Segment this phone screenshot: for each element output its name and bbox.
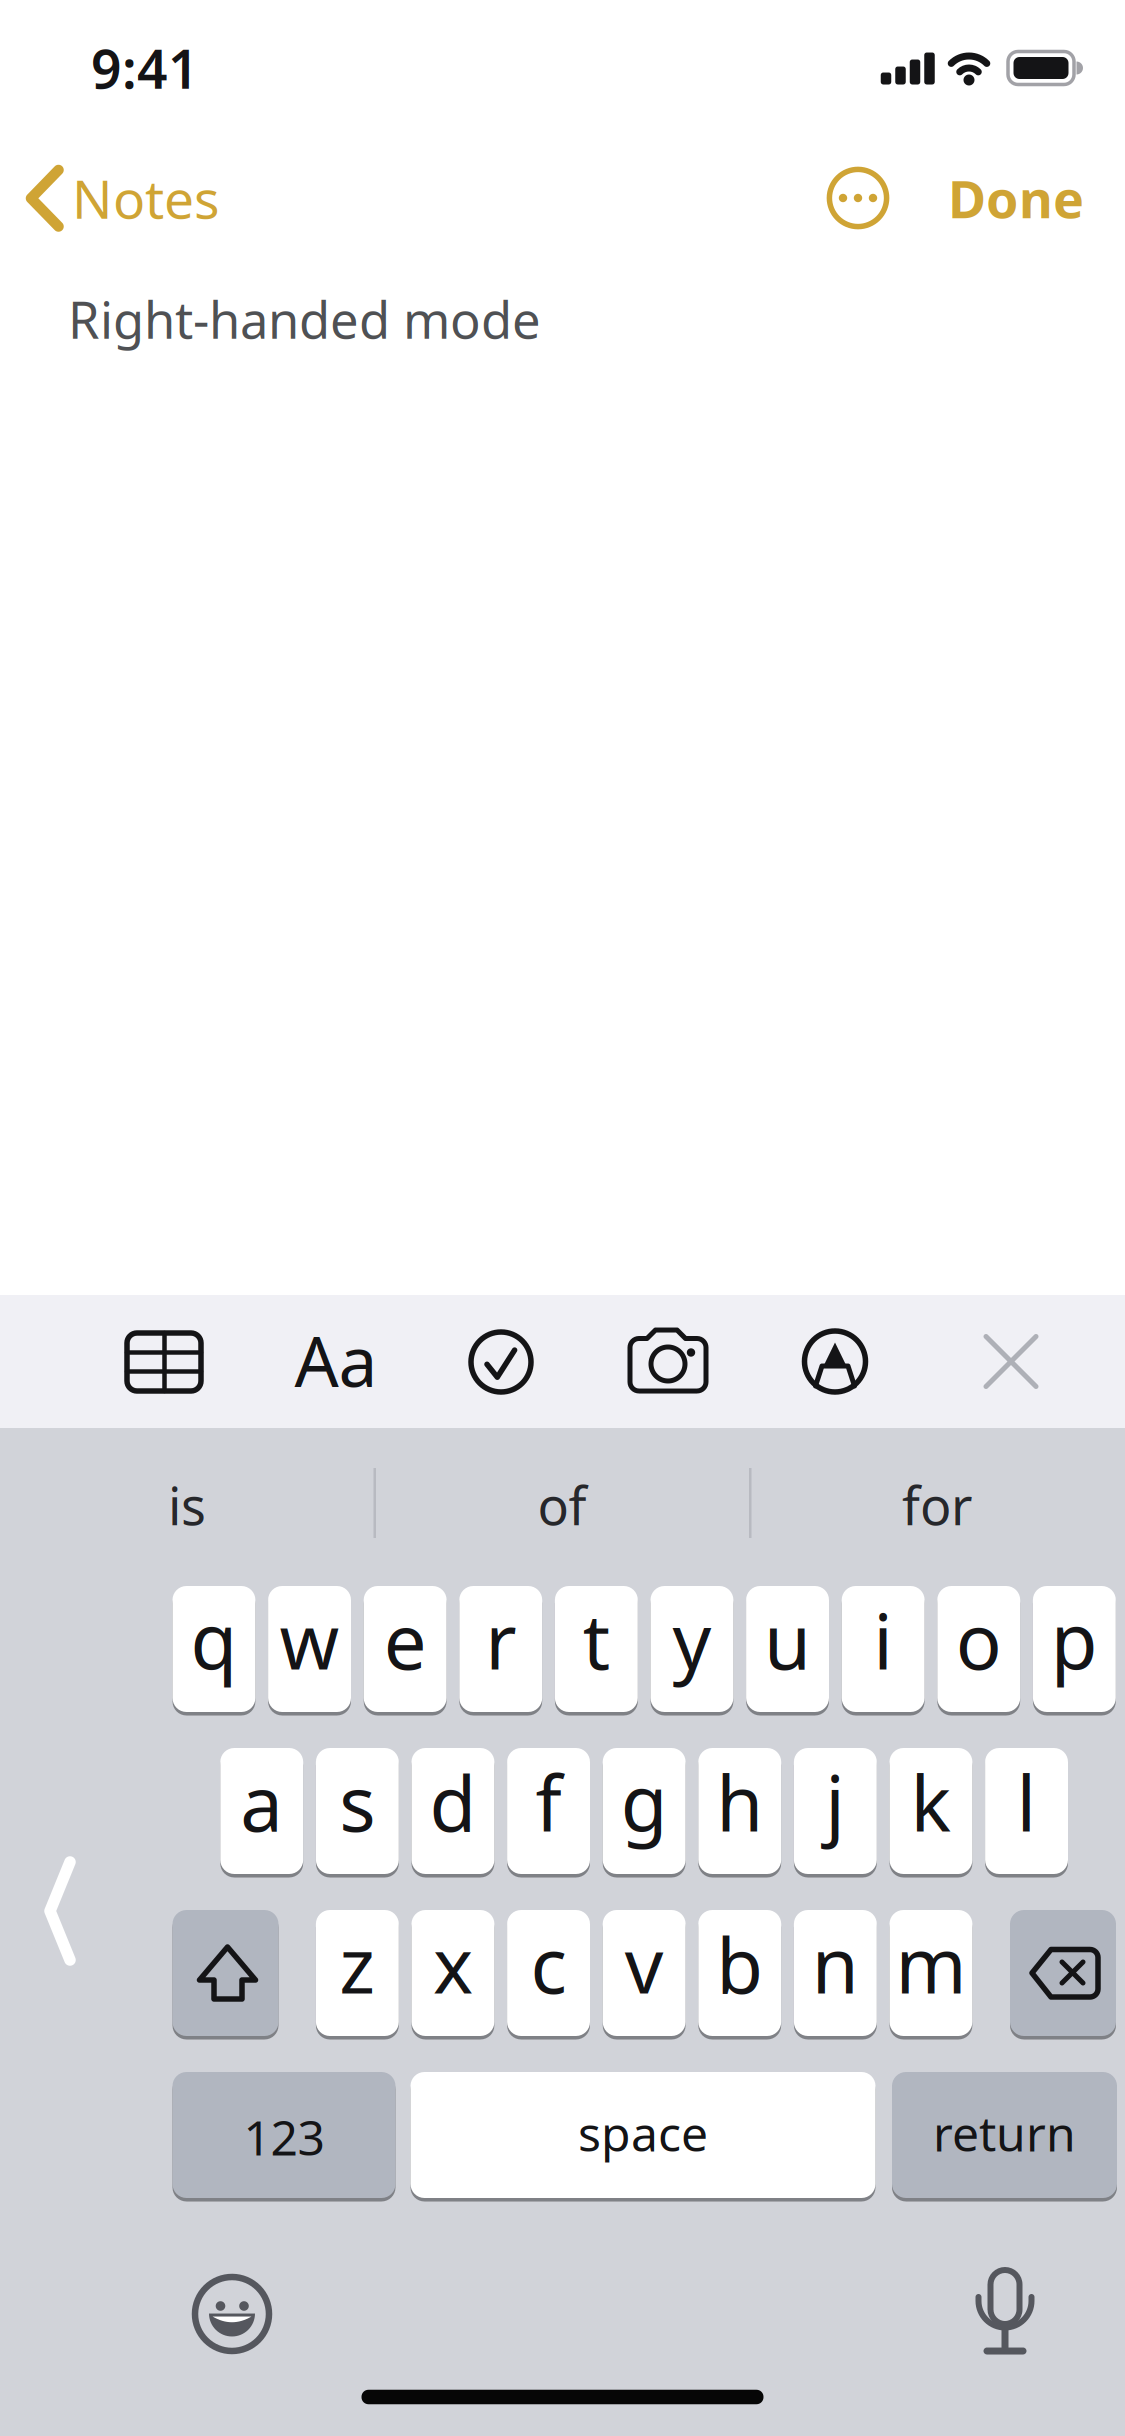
- button[interactable]: y: [650, 1586, 733, 1712]
- button[interactable]: w: [268, 1586, 351, 1712]
- button[interactable]: Done: [896, 160, 1125, 236]
- button[interactable]: u: [746, 1586, 829, 1712]
- staticText: k: [910, 1751, 951, 1852]
- staticText: p: [1051, 1589, 1098, 1690]
- staticText: q: [190, 1589, 237, 1690]
- staticText: r: [485, 1589, 516, 1690]
- staticText: u: [764, 1589, 811, 1690]
- button[interactable]: c: [507, 1910, 590, 2036]
- staticText: j: [825, 1751, 845, 1852]
- button[interactable]: 123: [172, 2072, 395, 2198]
- staticText: is: [168, 1470, 206, 1540]
- button[interactable]: return: [892, 2072, 1117, 2198]
- staticText: v: [625, 1913, 664, 2014]
- staticText: x: [433, 1913, 473, 2014]
- staticText: i: [873, 1589, 893, 1690]
- staticText: 123: [243, 2105, 324, 2169]
- staticText: Right-handed mode: [68, 285, 541, 353]
- button[interactable]: f: [507, 1748, 590, 1874]
- button[interactable]: k: [889, 1748, 972, 1874]
- staticText: a: [240, 1751, 283, 1852]
- button[interactable]: [456, 1317, 546, 1407]
- button[interactable]: p: [1033, 1586, 1116, 1712]
- staticText: Aa: [294, 1314, 377, 1406]
- button[interactable]: space: [410, 2072, 875, 2198]
- button[interactable]: g: [603, 1748, 686, 1874]
- button[interactable]: Aa: [281, 1315, 391, 1405]
- staticText: o: [956, 1589, 1002, 1690]
- button[interactable]: Notes: [20, 160, 215, 236]
- button[interactable]: [966, 1316, 1056, 1406]
- button[interactable]: x: [411, 1910, 494, 2036]
- staticText: z: [339, 1913, 375, 2014]
- button[interactable]: [954, 2261, 1054, 2361]
- button[interactable]: t: [555, 1586, 638, 1712]
- button[interactable]: z: [316, 1910, 399, 2036]
- staticText: for: [902, 1470, 972, 1540]
- button[interactable]: is: [2, 1438, 372, 1572]
- button[interactable]: a: [220, 1748, 303, 1874]
- button[interactable]: h: [698, 1748, 781, 1874]
- button[interactable]: [30, 1854, 90, 1968]
- button[interactable]: o: [937, 1586, 1020, 1712]
- staticText: c: [530, 1913, 566, 2014]
- staticText: 9:41: [91, 33, 199, 103]
- button[interactable]: r: [459, 1586, 542, 1712]
- button[interactable]: n: [794, 1910, 877, 2036]
- staticText: Done: [948, 163, 1084, 233]
- staticText: return: [933, 2101, 1076, 2165]
- staticText: n: [812, 1913, 859, 2014]
- button[interactable]: of: [377, 1438, 747, 1572]
- button[interactable]: d: [411, 1748, 494, 1874]
- staticText: y: [672, 1589, 711, 1690]
- staticText: Notes: [72, 163, 220, 233]
- staticText: f: [535, 1751, 561, 1852]
- button[interactable]: [172, 1910, 278, 2036]
- button[interactable]: [623, 1317, 713, 1407]
- button[interactable]: [119, 1317, 209, 1407]
- button[interactable]: i: [842, 1586, 925, 1712]
- staticText: s: [339, 1751, 375, 1852]
- button[interactable]: [820, 160, 896, 236]
- button[interactable]: [182, 2264, 282, 2364]
- staticText: g: [621, 1751, 668, 1852]
- button[interactable]: q: [172, 1586, 255, 1712]
- staticText: space: [578, 2101, 708, 2165]
- staticText: m: [895, 1913, 966, 2014]
- staticText: h: [716, 1751, 763, 1852]
- button[interactable]: m: [889, 1910, 972, 2036]
- staticText: b: [716, 1913, 763, 2014]
- staticText: d: [429, 1751, 476, 1852]
- button[interactable]: v: [603, 1910, 686, 2036]
- button[interactable]: [1010, 1910, 1116, 2036]
- button[interactable]: l: [985, 1748, 1068, 1874]
- staticText: e: [384, 1589, 427, 1690]
- staticText: of: [537, 1470, 586, 1540]
- button[interactable]: b: [698, 1910, 781, 2036]
- button[interactable]: for: [752, 1438, 1122, 1572]
- button[interactable]: s: [316, 1748, 399, 1874]
- button[interactable]: e: [364, 1586, 447, 1712]
- staticText: t: [583, 1589, 610, 1690]
- staticText: w: [279, 1589, 339, 1690]
- staticText: l: [1016, 1751, 1036, 1852]
- button[interactable]: j: [794, 1748, 877, 1874]
- button[interactable]: [790, 1316, 880, 1406]
